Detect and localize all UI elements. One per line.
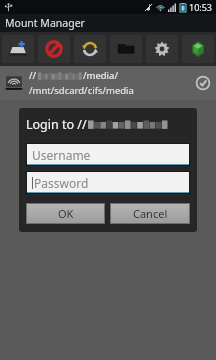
staticText: Password [34,175,89,191]
button[interactable]: Browse [110,35,142,63]
staticText: 10:53 [189,1,213,13]
button[interactable]: OK [27,204,104,223]
button[interactable]: // [0,66,216,100]
button[interactable]: Mounted [195,75,211,91]
staticText: OK [58,206,74,221]
staticText: Cancel [133,206,168,221]
staticText: Mount Manager [5,16,85,30]
button[interactable]: Settings [146,35,178,63]
button[interactable]: Add mount [2,35,34,63]
button[interactable]: Cancel [111,204,189,223]
button[interactable]: Username [27,144,189,165]
button[interactable]: Package [182,35,214,63]
button[interactable]: Password [27,172,189,193]
button[interactable]: Unmount [38,35,70,63]
staticText: // [29,69,37,82]
staticText: /mnt/sdcard/cifs/media [29,84,134,97]
staticText: /media/ [83,69,118,82]
staticText: Login to // [26,116,87,133]
staticText: Username [32,147,91,163]
button[interactable]: Refresh [74,35,106,63]
